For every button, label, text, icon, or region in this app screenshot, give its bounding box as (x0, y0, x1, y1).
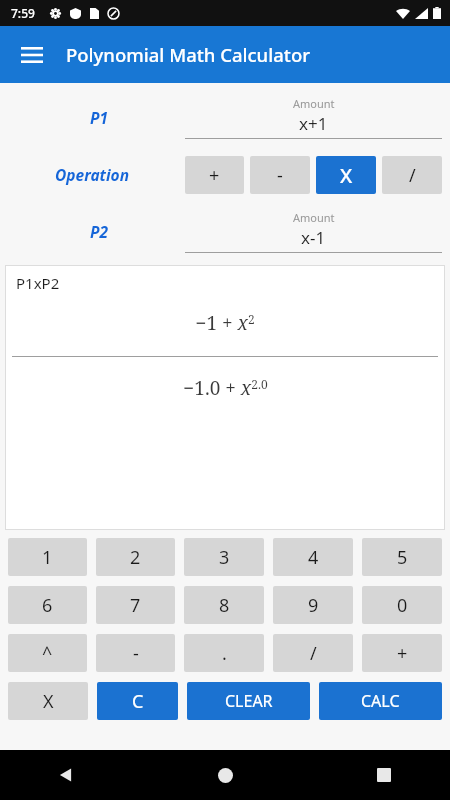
button[interactable]: Amount (185, 96, 442, 139)
button[interactable]: 9 (273, 586, 353, 624)
staticText: 8 (219, 593, 230, 618)
staticText: P1xP2 (16, 273, 60, 293)
staticText: 2 (130, 545, 141, 570)
staticText: 1 (42, 545, 53, 570)
staticText: X (43, 689, 54, 714)
button[interactable]: 8 (184, 586, 264, 624)
button[interactable]: / (382, 156, 442, 194)
staticText: 5 (397, 545, 408, 570)
staticText: Operation (55, 164, 130, 185)
button[interactable]: 1 (8, 538, 87, 576)
staticText: X (340, 162, 353, 189)
button[interactable]: . (184, 634, 264, 672)
button[interactable]: 2 (96, 538, 175, 576)
staticText: / (409, 163, 416, 188)
button[interactable]: Recent apps (366, 757, 402, 793)
button[interactable]: C (97, 682, 178, 720)
staticText: Amount (293, 210, 335, 225)
staticText: 4 (308, 545, 319, 570)
staticText: 6 (42, 593, 53, 618)
button[interactable]: Amount (185, 210, 442, 253)
button[interactable]: CALC (319, 682, 442, 720)
staticText: Polynomial Math Calculator (66, 42, 311, 67)
staticText: −1 + x2 (195, 310, 255, 336)
button[interactable]: ^ (8, 634, 87, 672)
button[interactable]: 6 (8, 586, 87, 624)
staticText: 7 (130, 593, 141, 618)
button[interactable]: X (316, 156, 376, 194)
staticText: C (132, 689, 144, 714)
staticText: 3 (219, 545, 230, 570)
button[interactable]: Home (207, 757, 243, 793)
button[interactable]: 4 (273, 538, 353, 576)
button[interactable]: CLEAR (187, 682, 310, 720)
staticText: P1 (90, 107, 108, 128)
staticText: −1.0 + x2.0 (183, 375, 268, 401)
staticText: Amount (293, 96, 335, 111)
button[interactable]: X (8, 682, 88, 720)
staticText: . (222, 641, 227, 666)
staticText: + (397, 641, 408, 666)
button[interactable]: 0 (362, 586, 442, 624)
staticText: P2 (90, 221, 108, 242)
staticText: 7:59 (11, 5, 35, 21)
staticText: x+1 (299, 112, 328, 135)
staticText: 0 (397, 593, 408, 618)
staticText: - (277, 163, 283, 188)
staticText: / (310, 641, 317, 666)
staticText: x-1 (301, 226, 326, 249)
staticText: ^ (42, 641, 53, 666)
staticText: - (133, 641, 139, 666)
button[interactable]: Open navigation menu (12, 35, 52, 75)
button[interactable]: + (362, 634, 442, 672)
staticText: 9 (308, 593, 319, 618)
staticText: CALC (361, 690, 400, 712)
button[interactable]: 5 (362, 538, 442, 576)
button[interactable]: Back (48, 757, 84, 793)
button[interactable]: / (273, 634, 353, 672)
button[interactable]: - (250, 156, 310, 194)
staticText: CLEAR (225, 690, 273, 712)
staticText: + (209, 163, 220, 188)
button[interactable]: 7 (96, 586, 175, 624)
button[interactable]: + (185, 156, 244, 194)
button[interactable]: - (96, 634, 175, 672)
button[interactable]: 3 (184, 538, 264, 576)
